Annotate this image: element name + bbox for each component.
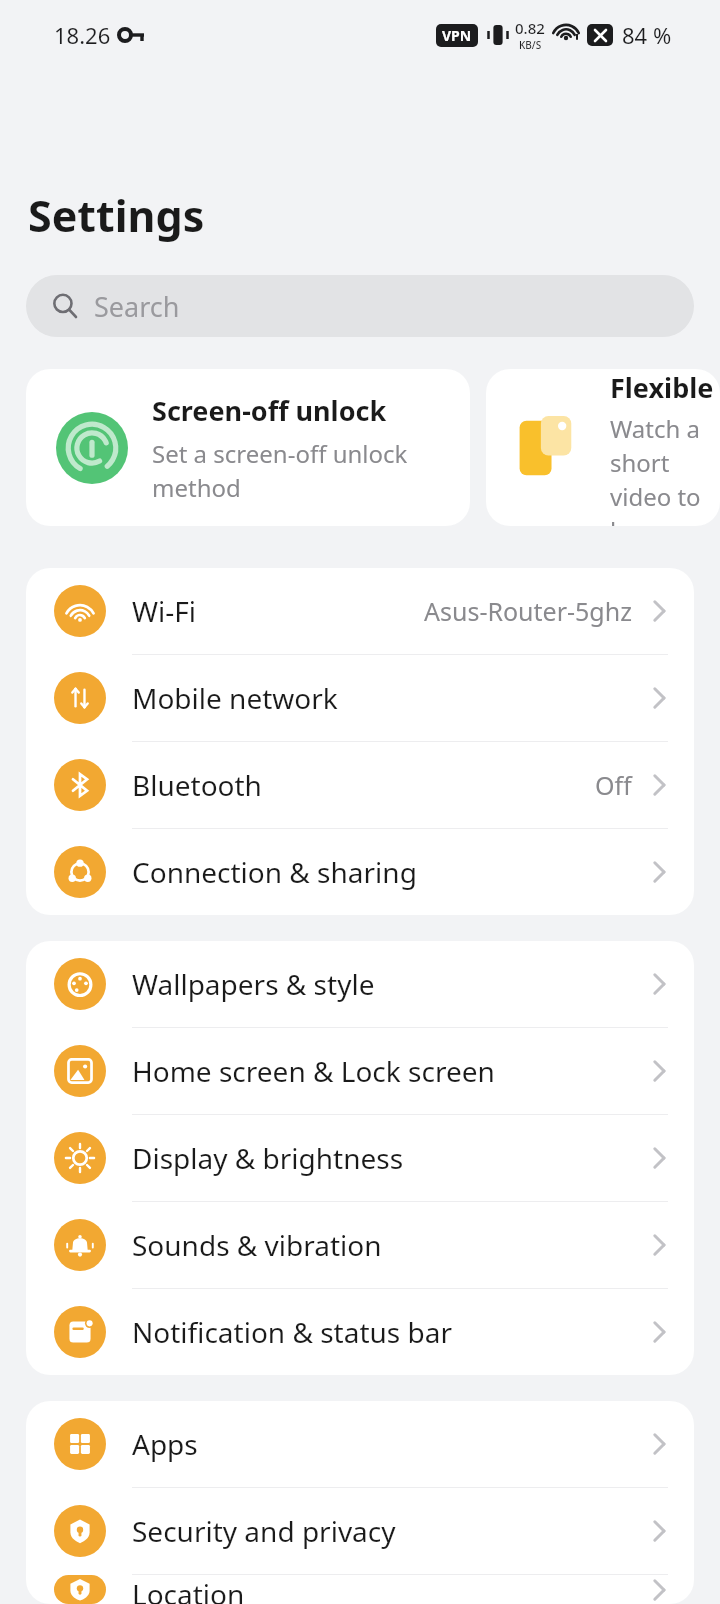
staticText: Mobile network xyxy=(132,679,646,717)
button[interactable]: Security and privacy xyxy=(26,1488,694,1574)
staticText: Screen-off unlock xyxy=(152,392,387,429)
staticText: 18.26 xyxy=(54,20,111,50)
staticText: Search xyxy=(94,288,180,325)
button[interactable]: Location xyxy=(26,1575,694,1604)
button[interactable]: Wallpapers & style xyxy=(26,941,694,1027)
button[interactable]: Search xyxy=(26,275,694,337)
staticText: Bluetooth xyxy=(132,766,595,804)
staticText: Set a screen-off unlock method xyxy=(152,437,470,504)
staticText: KB/S xyxy=(519,38,542,52)
staticText: Connection & sharing xyxy=(132,853,646,891)
staticText: Location xyxy=(132,1575,646,1604)
button[interactable]: Mobile network xyxy=(26,655,694,741)
button[interactable]: Sounds & vibration xyxy=(26,1202,694,1288)
staticText: Notification & status bar xyxy=(132,1313,646,1351)
button[interactable]: Bluetooth xyxy=(26,742,694,828)
staticText: Wi-Fi xyxy=(132,592,424,630)
button[interactable]: Screen-off unlock xyxy=(26,369,470,526)
button[interactable]: Wi-Fi xyxy=(26,568,694,654)
staticText: Sounds & vibration xyxy=(132,1226,646,1264)
staticText: Settings xyxy=(28,186,205,245)
staticText: Off xyxy=(595,768,632,802)
button[interactable]: Flexible windows xyxy=(486,369,720,526)
staticText: 0.82 xyxy=(515,18,545,38)
button[interactable]: Apps xyxy=(26,1401,694,1487)
staticText: Flexible windows xyxy=(610,369,720,406)
button[interactable]: Home screen & Lock screen xyxy=(26,1028,694,1114)
staticText: Watch a short video to learn about float… xyxy=(610,412,720,526)
staticText: Home screen & Lock screen xyxy=(132,1052,646,1090)
button[interactable]: Connection & sharing xyxy=(26,829,694,915)
staticText: Asus-Router-5ghz xyxy=(424,594,632,628)
staticText: Apps xyxy=(132,1425,646,1463)
staticText: Security and privacy xyxy=(132,1512,646,1550)
staticText: Display & brightness xyxy=(132,1139,646,1177)
staticText: VPN xyxy=(442,26,472,45)
staticText: Wallpapers & style xyxy=(132,965,646,1003)
button[interactable]: Display & brightness xyxy=(26,1115,694,1201)
button[interactable]: Notification & status bar xyxy=(26,1289,694,1375)
staticText: 84 % xyxy=(622,20,672,50)
